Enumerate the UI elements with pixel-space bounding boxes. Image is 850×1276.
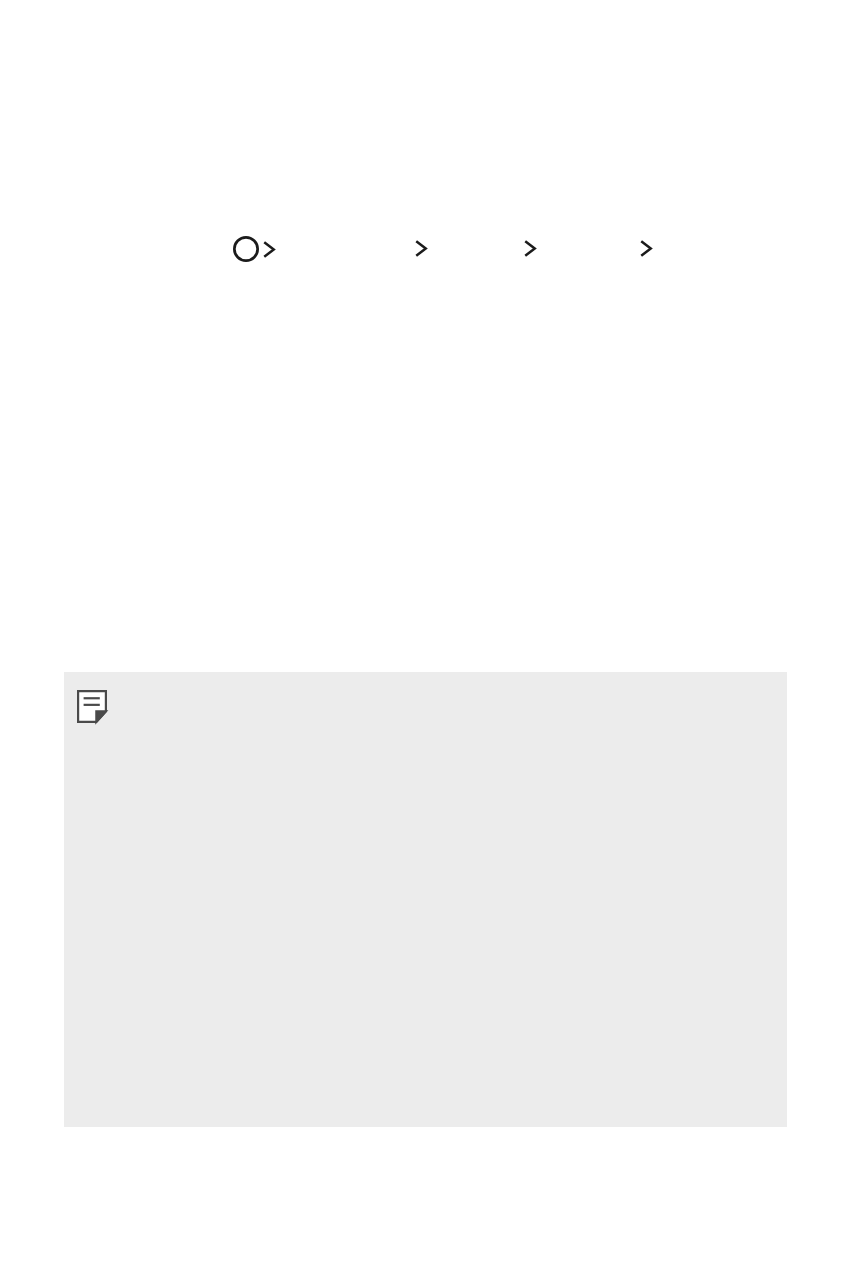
button[interactable]: Breadcrumb separator — [524, 240, 536, 257]
button[interactable]: Breadcrumb separator — [640, 240, 652, 257]
other: Document — [77, 690, 107, 723]
button[interactable]: Document — [64, 672, 787, 1127]
button[interactable]: Breadcrumb separator — [415, 240, 427, 257]
button[interactable]: Breadcrumb separator — [263, 241, 275, 258]
button[interactable]: Home — [233, 236, 259, 262]
